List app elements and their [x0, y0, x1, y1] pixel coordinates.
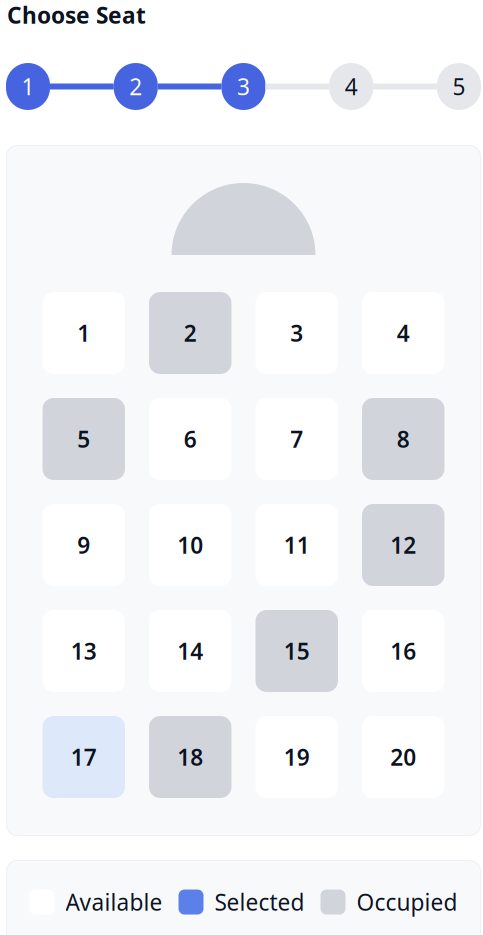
- staticText: 2: [129, 71, 142, 101]
- button[interactable]: 18: [149, 716, 231, 798]
- button[interactable]: 11: [255, 504, 338, 586]
- button[interactable]: 6: [149, 398, 231, 480]
- staticText: 8: [397, 424, 410, 454]
- button[interactable]: 15: [255, 610, 338, 692]
- staticText: 6: [184, 424, 197, 454]
- button[interactable]: 2: [114, 63, 158, 110]
- button[interactable]: 5: [437, 63, 481, 110]
- staticText: 1: [77, 318, 90, 348]
- staticText: 13: [71, 636, 97, 666]
- staticText: 3: [290, 318, 303, 348]
- staticText: 16: [390, 636, 416, 666]
- button[interactable]: 3: [255, 292, 338, 374]
- staticText: 5: [77, 424, 90, 454]
- staticText: 14: [177, 636, 203, 666]
- staticText: 4: [397, 318, 410, 348]
- staticText: 18: [177, 742, 203, 772]
- button[interactable]: 10: [149, 504, 231, 586]
- staticText: Available: [65, 887, 162, 917]
- button[interactable]: 2: [149, 292, 231, 374]
- button[interactable]: 14: [149, 610, 231, 692]
- button[interactable]: 1: [42, 292, 125, 374]
- staticText: 2: [184, 318, 197, 348]
- staticText: 10: [177, 530, 203, 560]
- button[interactable]: 8: [362, 398, 444, 480]
- staticText: 1: [21, 71, 34, 101]
- button[interactable]: 20: [362, 716, 444, 798]
- button[interactable]: 4: [329, 63, 373, 110]
- button[interactable]: 9: [42, 504, 125, 586]
- button[interactable]: 17: [42, 716, 125, 798]
- button[interactable]: 16: [362, 610, 444, 692]
- button[interactable]: 4: [362, 292, 444, 374]
- staticText: Choose Seat: [7, 0, 146, 30]
- staticText: 19: [284, 742, 310, 772]
- button[interactable]: 12: [362, 504, 444, 586]
- button[interactable]: 3: [221, 63, 265, 110]
- staticText: 4: [345, 71, 358, 101]
- staticText: 20: [390, 742, 416, 772]
- staticText: 17: [71, 742, 97, 772]
- button[interactable]: 5: [42, 398, 125, 480]
- staticText: 11: [284, 530, 310, 560]
- staticText: 5: [452, 71, 465, 101]
- staticText: 12: [390, 530, 416, 560]
- button[interactable]: 7: [255, 398, 338, 480]
- staticText: 7: [290, 424, 303, 454]
- staticText: 3: [237, 71, 250, 101]
- button[interactable]: 1: [6, 63, 50, 110]
- staticText: Selected: [214, 887, 304, 917]
- staticText: 9: [77, 530, 90, 560]
- staticText: Occupied: [356, 887, 457, 917]
- staticText: 15: [284, 636, 310, 666]
- button[interactable]: 13: [42, 610, 125, 692]
- button[interactable]: 19: [255, 716, 338, 798]
